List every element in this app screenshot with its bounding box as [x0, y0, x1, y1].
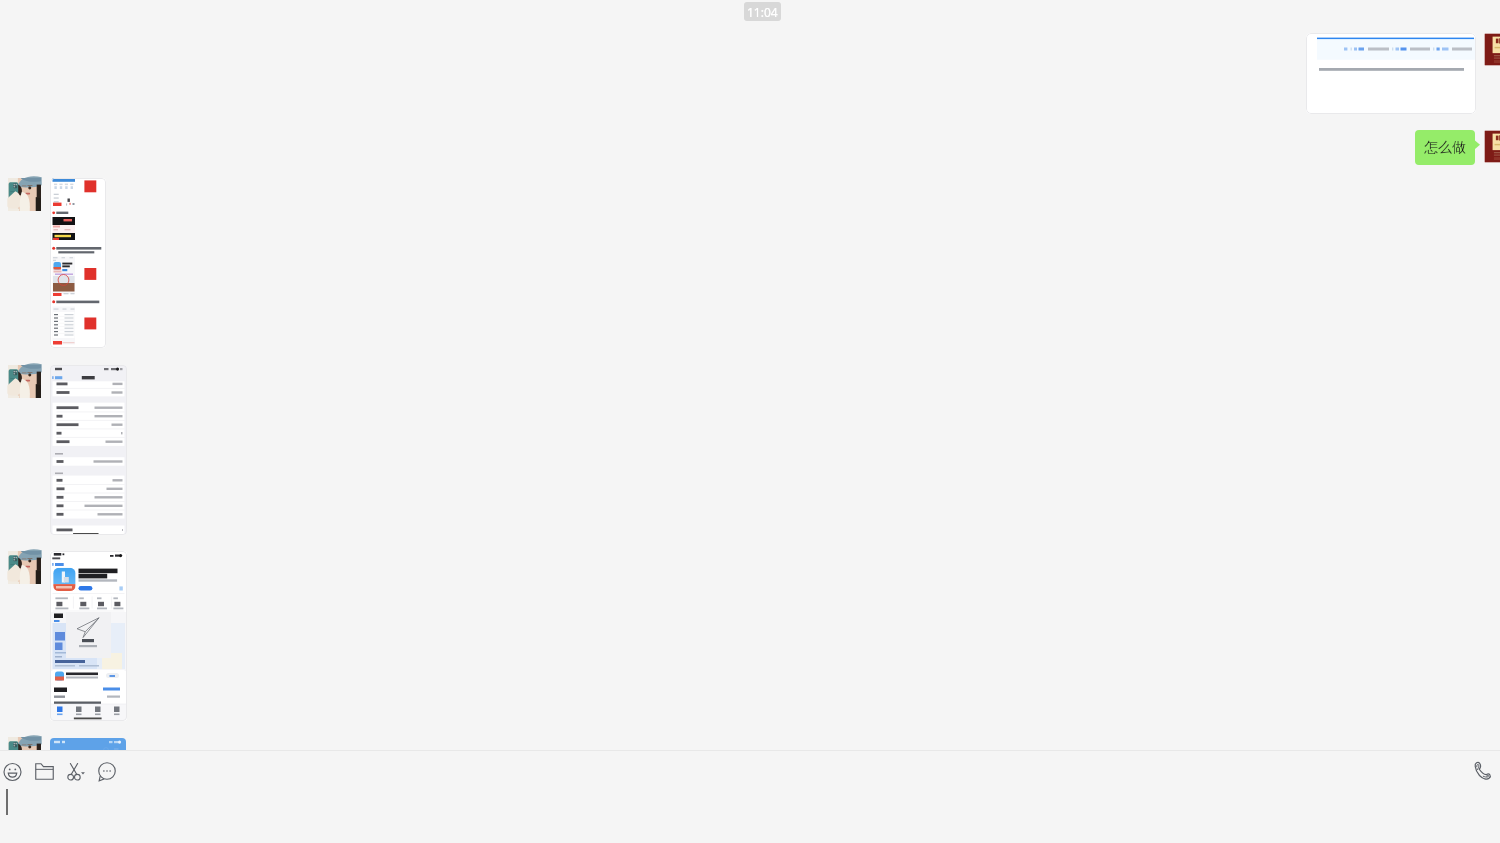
button[interactable]: Voice call	[1469, 759, 1494, 784]
button[interactable]: 怎么做	[1415, 130, 1475, 165]
button[interactable]: Chat history	[94, 759, 119, 784]
button[interactable]: Shopping app screenshot image	[50, 178, 106, 348]
staticText: 11:04	[747, 4, 778, 20]
button[interactable]: Contact avatar	[8, 178, 41, 211]
button[interactable]: Contact avatar	[8, 365, 41, 398]
button[interactable]: Screenshot	[62, 759, 87, 784]
button[interactable]: Contact avatar	[8, 551, 41, 584]
button[interactable]: Files	[32, 759, 57, 784]
button[interactable]: Screenshot image	[50, 738, 126, 798]
button[interactable]: App Store screenshot image	[50, 551, 127, 721]
button[interactable]: My avatar	[1484, 130, 1500, 163]
staticText: 怎么做	[1424, 139, 1466, 157]
button[interactable]: My avatar	[1484, 33, 1500, 66]
button[interactable]: Browser screenshot image	[1306, 33, 1476, 114]
button[interactable]: Emoji	[0, 759, 25, 784]
button[interactable]: Phone settings screenshot image	[50, 365, 127, 535]
button[interactable]: Contact avatar	[8, 737, 41, 770]
